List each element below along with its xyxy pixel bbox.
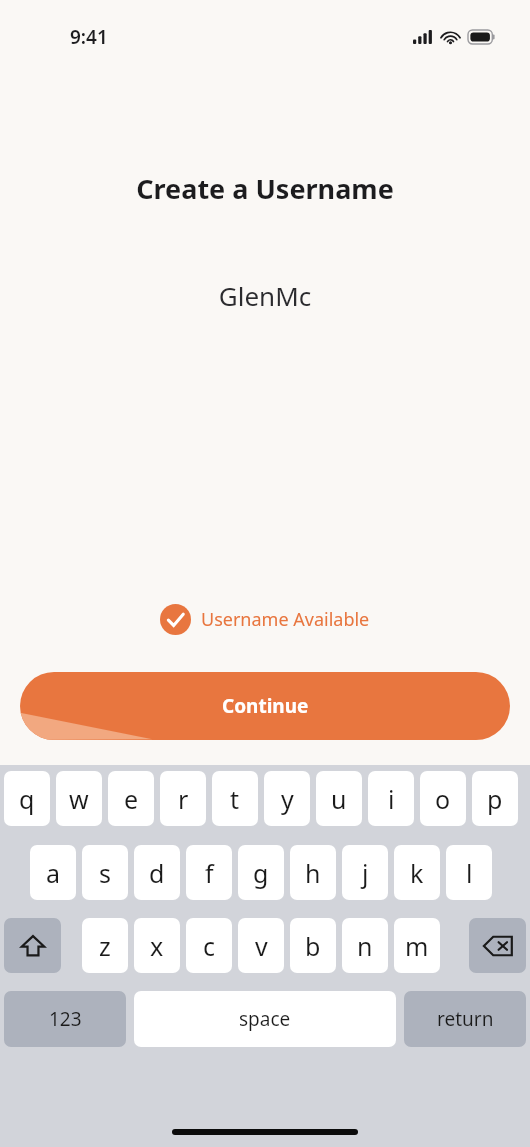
button[interactable]: x: [134, 918, 180, 973]
staticText: k: [410, 856, 424, 890]
staticText: r: [178, 782, 189, 816]
staticText: e: [124, 782, 139, 816]
button[interactable]: l: [446, 845, 492, 900]
staticText: u: [331, 782, 347, 816]
button[interactable]: h: [290, 845, 336, 900]
button[interactable]: c: [186, 918, 232, 973]
staticText: l: [466, 856, 473, 890]
staticText: Username Available: [201, 607, 370, 632]
staticText: a: [46, 856, 61, 890]
button[interactable]: return: [404, 991, 526, 1047]
staticText: s: [99, 856, 111, 890]
staticText: b: [305, 929, 321, 963]
button[interactable]: a: [30, 845, 76, 900]
button[interactable]: k: [394, 845, 440, 900]
staticText: GlenMc: [0, 278, 530, 313]
staticText: 123: [49, 1006, 82, 1032]
button[interactable]: i: [368, 771, 414, 826]
staticText: x: [150, 929, 164, 963]
button[interactable]: b: [290, 918, 336, 973]
staticText: t: [230, 782, 240, 816]
button[interactable]: f: [186, 845, 232, 900]
button[interactable]: v: [238, 918, 284, 973]
staticText: Continue: [222, 693, 309, 719]
button[interactable]: s: [82, 845, 128, 900]
button[interactable]: q: [4, 771, 50, 826]
staticText: v: [255, 929, 268, 963]
staticText: z: [99, 929, 111, 963]
button[interactable]: r: [160, 771, 206, 826]
staticText: m: [405, 929, 429, 963]
button[interactable]: u: [316, 771, 362, 826]
staticText: p: [487, 782, 503, 816]
button[interactable]: z: [82, 918, 128, 973]
staticText: d: [149, 856, 165, 890]
button[interactable]: Backspace: [469, 918, 526, 973]
button[interactable]: Shift: [4, 918, 61, 973]
button[interactable]: Continue: [20, 672, 510, 740]
staticText: w: [69, 782, 89, 816]
button[interactable]: o: [420, 771, 466, 826]
staticText: n: [357, 929, 373, 963]
staticText: g: [253, 856, 269, 890]
staticText: i: [388, 782, 395, 816]
button[interactable]: e: [108, 771, 154, 826]
button[interactable]: g: [238, 845, 284, 900]
button[interactable]: t: [212, 771, 258, 826]
button[interactable]: w: [56, 771, 102, 826]
staticText: space: [239, 1006, 291, 1032]
button[interactable]: 123: [4, 991, 126, 1047]
staticText: 9:41: [70, 24, 108, 50]
staticText: q: [19, 782, 35, 816]
staticText: return: [437, 1006, 494, 1032]
button[interactable]: d: [134, 845, 180, 900]
staticText: Create a Username: [0, 170, 530, 207]
staticText: c: [203, 929, 216, 963]
staticText: h: [305, 856, 321, 890]
staticText: o: [435, 782, 451, 816]
staticText: f: [205, 856, 214, 890]
staticText: y: [281, 782, 294, 816]
button[interactable]: space: [134, 991, 396, 1047]
button[interactable]: y: [264, 771, 310, 826]
button[interactable]: m: [394, 918, 440, 973]
button[interactable]: j: [342, 845, 388, 900]
staticText: j: [362, 856, 369, 890]
button[interactable]: p: [472, 771, 518, 826]
button[interactable]: n: [342, 918, 388, 973]
